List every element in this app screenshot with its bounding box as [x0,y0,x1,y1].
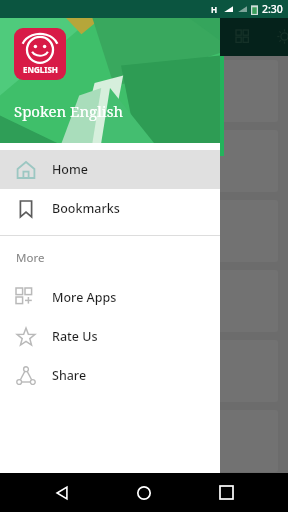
staticText: Spoken English [14,101,123,121]
button[interactable]: Home [0,150,220,189]
staticText: Speaking Skills [24,487,117,505]
button[interactable]: Home [124,473,164,512]
button[interactable]: Share [0,356,220,395]
button[interactable]: Speaking Skills [10,410,278,472]
staticText: Speaking Skills [24,362,117,380]
staticText: Share [52,367,87,384]
button[interactable]: Bookmarks [0,189,220,228]
button[interactable]: Speaking Skills [10,270,278,332]
staticText: More Apps [52,289,117,306]
button[interactable]: Speaking Skills [10,60,278,122]
staticText: Speaking Skills [24,292,117,310]
button[interactable]: Grid view [228,22,256,50]
staticText: Speaking Skills [24,152,117,170]
staticText: Speaking Skills [24,82,117,100]
button[interactable]: Rate Us [0,317,220,356]
button[interactable]: Speaking Skills [10,130,278,192]
staticText: Home [52,161,89,178]
button[interactable]: Speaking Skills [10,200,278,262]
staticText: ENGLISH [23,64,58,75]
staticText: More [16,250,45,266]
staticText: Bookmarks [52,200,120,217]
staticText: Speaking Skills [24,222,117,240]
staticText: 2:30 [262,2,283,16]
staticText: Rate Us [52,328,98,345]
staticText: H [211,4,218,15]
button[interactable]: Back [42,473,82,512]
button[interactable]: Recents [206,473,246,512]
button[interactable]: Speaking Skills [10,340,278,402]
button[interactable]: Speaking Skills [10,480,278,512]
button[interactable]: More Apps [0,278,220,317]
button[interactable]: Brightness [270,22,288,50]
